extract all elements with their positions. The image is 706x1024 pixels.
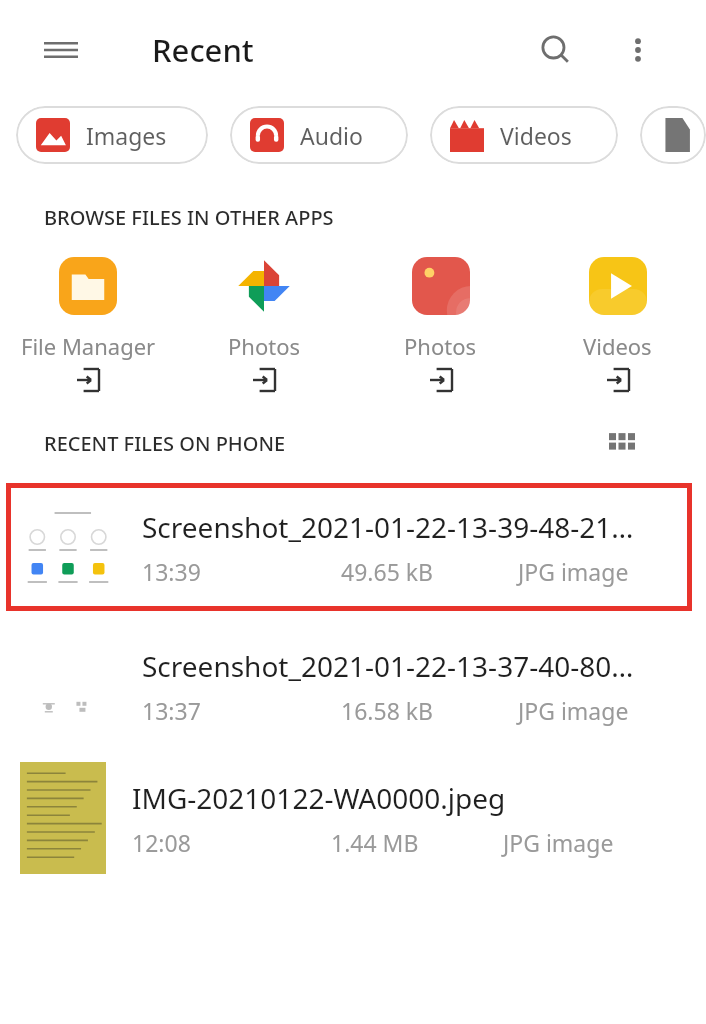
staticText: IMG-20210122-WA0000.jpeg: [132, 779, 506, 817]
staticText: JPG image: [518, 695, 629, 726]
staticText: Recent: [152, 29, 254, 71]
staticText: RECENT FILES ON PHONE: [44, 430, 286, 457]
button[interactable]: Open navigation drawer: [38, 27, 84, 73]
staticText: Videos: [583, 331, 652, 361]
staticText: Screenshot_2021-01-22-13-37-40-80…: [142, 647, 634, 685]
button[interactable]: More options: [614, 26, 662, 74]
staticText: BROWSE FILES IN OTHER APPS: [44, 204, 334, 231]
staticText: Screenshot_2021-01-22-13-39-48-21…: [142, 508, 634, 546]
staticText: 16.58 kB: [341, 695, 434, 726]
button[interactable]: Search: [530, 24, 582, 76]
staticText: Images: [86, 120, 167, 151]
button[interactable]: Videos: [529, 251, 706, 395]
button[interactable]: Videos: [430, 106, 618, 164]
button[interactable]: Audio: [230, 106, 408, 164]
staticText: Photos: [228, 331, 301, 361]
staticText: 13:37: [142, 695, 201, 726]
staticText: File Manager: [21, 331, 156, 361]
button[interactable]: Photos: [352, 251, 529, 395]
staticText: Videos: [500, 120, 572, 151]
button[interactable]: IMG-20210122-WA0000.jpeg: [0, 759, 706, 877]
staticText: Photos: [404, 331, 477, 361]
button[interactable]: Switch to grid view: [600, 425, 644, 461]
staticText: Audio: [300, 120, 363, 151]
staticText: 49.65 kB: [341, 556, 434, 587]
staticText: JPG image: [518, 556, 629, 587]
button[interactable]: D: [640, 106, 706, 164]
button[interactable]: File Manager: [0, 251, 176, 395]
staticText: JPG image: [503, 827, 614, 858]
button[interactable]: Images: [16, 106, 208, 164]
staticText: 13:39: [142, 556, 201, 587]
staticText: 1.44 MB: [331, 827, 419, 858]
button[interactable]: Photos: [176, 251, 352, 395]
button[interactable]: Screenshot_2021-01-22-13-39-48-21…: [6, 483, 692, 611]
staticText: 12:08: [132, 827, 191, 858]
button[interactable]: Screenshot_2021-01-22-13-37-40-80…: [0, 627, 706, 745]
